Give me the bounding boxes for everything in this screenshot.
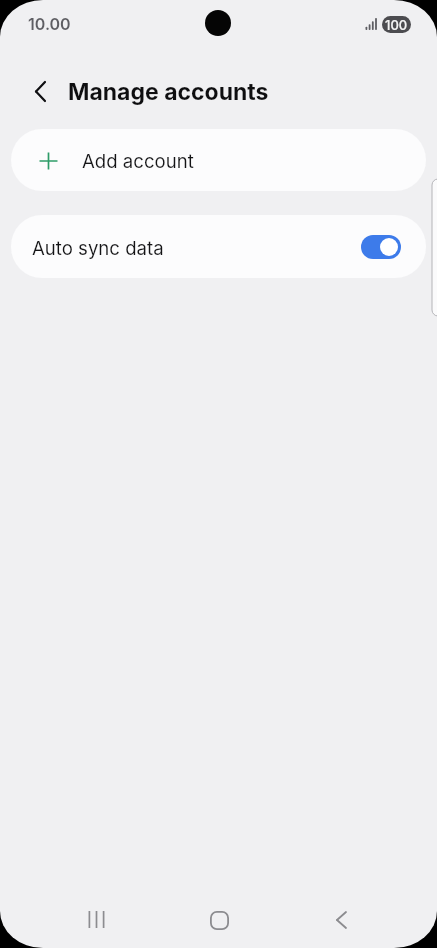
staticText: 10.00 xyxy=(28,14,71,33)
button[interactable]: Auto sync data xyxy=(11,215,426,278)
staticText: Manage accounts xyxy=(68,78,269,106)
button[interactable]: Auto sync data toggle xyxy=(361,235,401,259)
button[interactable]: Navigate up xyxy=(18,69,63,114)
button[interactable]: Add account xyxy=(11,129,426,191)
staticText: 100 xyxy=(385,17,408,33)
staticText: Add account xyxy=(82,150,194,173)
button[interactable]: Home xyxy=(197,898,242,943)
button[interactable]: Recent apps xyxy=(74,897,119,942)
staticText: Auto sync data xyxy=(32,237,164,260)
button[interactable]: Back xyxy=(319,897,364,942)
